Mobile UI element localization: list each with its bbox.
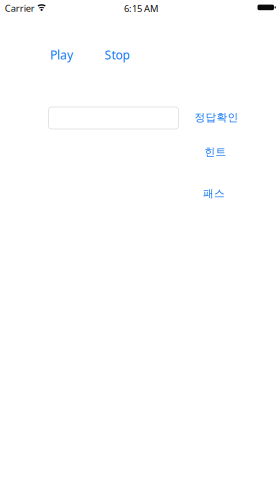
button[interactable]: Stop [104,47,129,63]
staticText: Play [50,47,73,63]
staticText: 힌트 [204,145,226,159]
staticText: 정답확인 [194,111,238,124]
staticText: Stop [104,47,129,63]
button[interactable]: Play [50,47,73,63]
staticText: 6:15 AM [124,2,158,15]
staticText: Carrier [5,2,35,14]
button[interactable]: 정답확인 [194,111,238,124]
staticText: 패스 [203,187,225,200]
button[interactable]: 패스 [203,187,225,200]
button[interactable]: 힌트 [204,145,226,159]
